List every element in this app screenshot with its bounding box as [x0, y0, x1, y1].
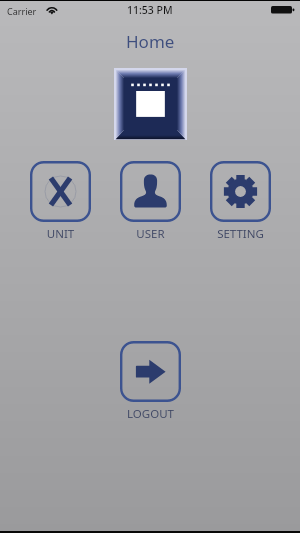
- staticText: Home: [126, 30, 175, 50]
- button[interactable]: User: [120, 161, 181, 244]
- staticText: SETTING: [210, 226, 271, 242]
- staticText: USER: [120, 226, 181, 242]
- button[interactable]: Logout: [120, 341, 181, 424]
- staticText: 11:53 PM: [127, 3, 173, 17]
- staticText: LOGOUT: [120, 406, 181, 422]
- button[interactable]: Unit: [30, 161, 91, 244]
- staticText: UNIT: [30, 226, 91, 242]
- button[interactable]: Setting: [210, 161, 271, 244]
- button[interactable]: Open app: [114, 68, 187, 140]
- staticText: Carrier: [7, 5, 37, 17]
